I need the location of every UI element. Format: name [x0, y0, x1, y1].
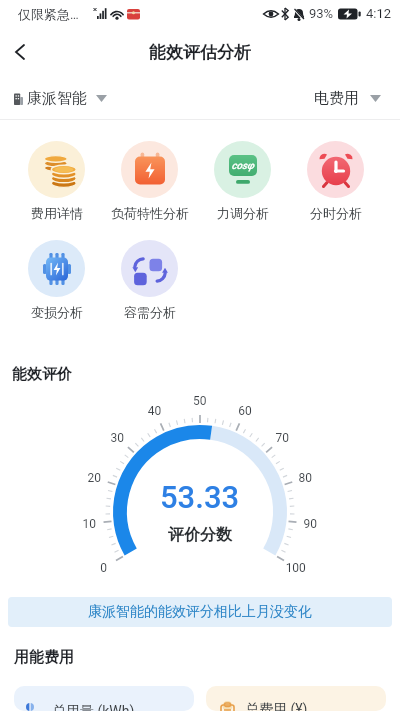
staticText: 力调分析 [217, 205, 269, 221]
button[interactable]: 费用详情 [10, 141, 103, 222]
staticText: 分时分析 [310, 205, 362, 221]
staticText: 变损分析 [31, 304, 83, 320]
button[interactable]: 总用量 (kWh) [14, 686, 194, 711]
staticText: 总用量 (kWh) [52, 703, 135, 711]
staticText: 电费用 [314, 89, 359, 108]
staticText: 53.33 [160, 479, 240, 515]
button[interactable]: 负荷特性分析 [103, 141, 196, 222]
staticText: 能效评估分析 [149, 42, 251, 63]
staticText: 费用详情 [31, 205, 83, 221]
staticText: 容需分析 [124, 304, 176, 320]
staticText: 康派智能 [27, 89, 87, 108]
staticText: 评价分数 [168, 525, 232, 545]
staticText: 负荷特性分析 [111, 205, 189, 221]
button[interactable]: 康派智能的能效评分相比上月没变化 [8, 597, 392, 627]
staticText: 4:12 [366, 6, 392, 21]
button[interactable]: 容需分析 [103, 240, 196, 321]
button[interactable]: 分时分析 [289, 141, 382, 222]
button[interactable]: 总费用 (¥) [206, 686, 386, 711]
button[interactable]: 康派智能 [0, 89, 107, 108]
staticText: 93% [309, 6, 334, 21]
staticText: 康派智能的能效评分相比上月没变化 [88, 603, 312, 621]
staticText: 总费用 (¥) [245, 701, 308, 711]
staticText: 能效评价 [12, 365, 72, 384]
staticText: 仅限紧急… [18, 6, 79, 22]
button[interactable]: 变损分析 [10, 240, 103, 321]
staticText: 用能费用 [14, 648, 74, 667]
button[interactable]: 力调分析 [196, 141, 289, 222]
button[interactable]: 电费用 [314, 89, 400, 108]
button[interactable] [0, 32, 40, 72]
